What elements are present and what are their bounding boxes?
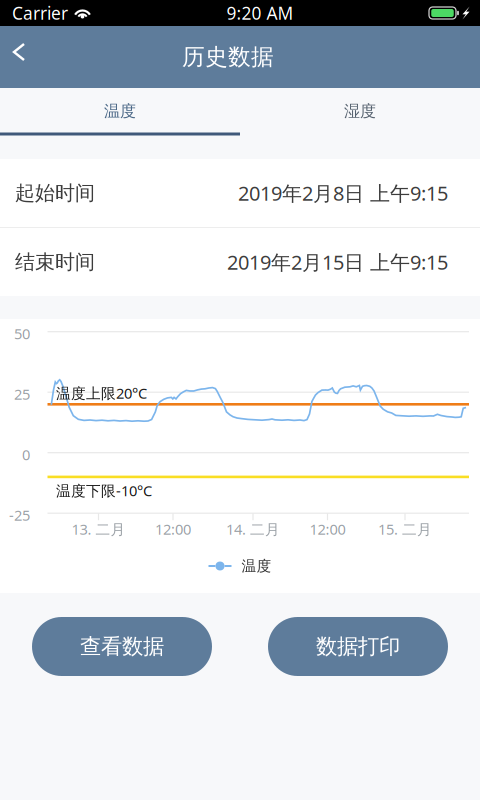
staticText: 2019年2月8日 上午9:15 (238, 180, 448, 206)
staticText: 12:00 (155, 519, 191, 539)
button[interactable]: Back (0, 32, 46, 82)
staticText: 起始时间 (15, 181, 95, 205)
button[interactable]: 湿度 (240, 88, 480, 149)
button[interactable]: 数据打印 (268, 617, 448, 676)
staticText: 湿度 (344, 101, 376, 121)
staticText: 2019年2月15日 上午9:15 (227, 249, 448, 275)
staticText: Carrier (12, 1, 68, 24)
staticText: 数据打印 (316, 633, 400, 660)
button[interactable]: 查看数据 (32, 617, 212, 676)
staticText: 14. 二月 (226, 519, 280, 539)
staticText: -25 (9, 505, 30, 525)
staticText: 50 (14, 324, 30, 343)
staticText: 25 (14, 384, 30, 404)
staticText: 温度 (241, 557, 271, 575)
button[interactable]: 温度 (0, 88, 240, 149)
staticText: 15. 二月 (378, 519, 432, 539)
staticText: 13. 二月 (71, 519, 125, 539)
staticText: 9:20 AM (226, 1, 293, 24)
staticText: 查看数据 (80, 633, 164, 660)
staticText: 温度下限-10°C (56, 481, 152, 500)
staticText: 结束时间 (15, 250, 95, 274)
staticText: 温度 (104, 101, 136, 121)
staticText: 历史数据 (182, 43, 274, 71)
staticText: 温度上限20°C (56, 383, 147, 403)
staticText: 12:00 (309, 519, 345, 539)
staticText: 0 (22, 445, 30, 464)
